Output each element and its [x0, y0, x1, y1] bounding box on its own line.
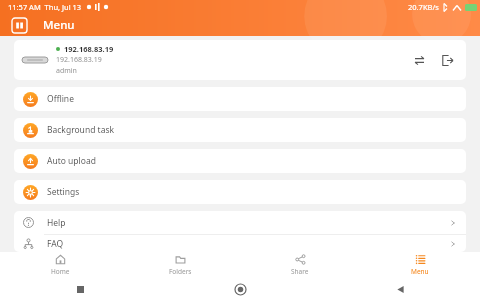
staticText: Menu — [43, 17, 75, 33]
staticText: admin — [56, 66, 77, 76]
button[interactable]: Offline — [14, 87, 466, 111]
staticText: Settings — [47, 186, 80, 198]
button[interactable]: Recents — [71, 280, 89, 298]
staticText: Home — [51, 267, 70, 276]
staticText: 11:57 AM Thu, Jul 13 — [8, 2, 82, 12]
staticText: 192.168.83.19 — [64, 44, 114, 54]
staticText: Help — [47, 217, 66, 229]
button[interactable]: Auto upload — [14, 149, 466, 173]
staticText: Offline — [47, 93, 74, 105]
button[interactable]: Background task — [14, 118, 466, 142]
button[interactable]: Folders — [120, 252, 240, 278]
button[interactable]: Help — [14, 211, 466, 234]
button[interactable]: Switch account — [408, 49, 430, 71]
button[interactable]: 192.168.83.19 — [14, 40, 466, 80]
staticText: 20.7KB/s — [408, 2, 439, 12]
button[interactable]: Settings — [14, 180, 466, 204]
staticText: Background task — [47, 124, 115, 136]
button[interactable]: App logo — [12, 18, 27, 33]
staticText: Menu — [411, 267, 429, 276]
button[interactable]: FAQ — [14, 235, 466, 252]
staticText: FAQ — [47, 238, 64, 250]
button[interactable]: Back — [391, 280, 409, 298]
staticText: Share — [291, 267, 309, 276]
button[interactable]: Home — [231, 280, 249, 298]
button[interactable]: Home — [0, 252, 120, 278]
button[interactable]: Menu — [360, 252, 480, 278]
staticText: 192.168.83.19 — [56, 55, 102, 65]
staticText: Folders — [169, 267, 192, 276]
staticText: Auto upload — [47, 155, 96, 167]
button[interactable]: Log out — [436, 49, 458, 71]
button[interactable]: Share — [240, 252, 360, 278]
